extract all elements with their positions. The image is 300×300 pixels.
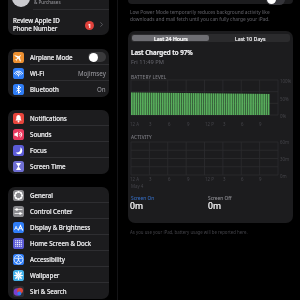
staticText: 6 xyxy=(241,121,244,127)
staticText: 3 xyxy=(149,121,152,127)
staticText: Home Screen & Dock xyxy=(30,239,92,247)
staticText: 0m xyxy=(130,200,143,212)
staticText: On xyxy=(97,85,106,93)
staticText: Sounds xyxy=(30,130,52,138)
other: Airplane Mode toggle xyxy=(88,52,106,62)
staticText: Focus xyxy=(30,146,47,154)
staticText: As you use your iPad, battery usage will… xyxy=(130,229,248,235)
staticText: 6 xyxy=(168,121,171,127)
staticText: 0m xyxy=(208,200,221,212)
button[interactable]: Bluetooth xyxy=(8,81,109,97)
staticText: 12 P xyxy=(205,176,214,182)
staticText: 9 xyxy=(187,121,190,127)
staticText: Fri 11:49 PM xyxy=(131,58,164,66)
button[interactable]: Home Screen & Dock xyxy=(8,235,109,251)
staticText: Screen On xyxy=(131,195,155,202)
staticText: Notifications xyxy=(30,114,67,122)
staticText: Last Charged to 97% xyxy=(131,48,193,56)
button[interactable]: Last 24 Hours xyxy=(132,35,209,41)
button[interactable]: Focus xyxy=(8,142,109,158)
staticText: Phone Number xyxy=(13,24,58,32)
staticText: 1 xyxy=(88,22,92,30)
staticText: 3 xyxy=(223,121,226,127)
staticText: 9 xyxy=(259,121,262,127)
staticText: 6 xyxy=(168,176,171,182)
staticText: Accessibility xyxy=(30,255,65,263)
staticText: Display & Brightness xyxy=(30,223,91,231)
staticText: 50% xyxy=(280,96,289,102)
staticText: BATTERY LEVEL xyxy=(131,74,167,80)
button[interactable]: Sounds xyxy=(8,126,109,142)
staticText: Wallpaper xyxy=(30,271,60,279)
staticText: 9 xyxy=(187,176,190,182)
staticText: Control Center xyxy=(30,207,73,215)
staticText: Siri & Search xyxy=(30,287,67,295)
staticText: 12 P xyxy=(205,121,214,127)
staticText: May 4 xyxy=(131,183,144,189)
button[interactable]: Display & Brightness xyxy=(8,219,109,235)
staticText: Low Power Mode temporarily reduces backg… xyxy=(130,9,270,16)
staticText: & Purchases xyxy=(34,0,61,5)
button[interactable]: Wi-Fi xyxy=(8,65,109,81)
staticText: ACTIVITY xyxy=(131,134,152,140)
button[interactable]: Accessibility xyxy=(8,251,109,267)
staticText: 60m xyxy=(280,139,290,145)
staticText: downloads and mail fetch until you can f… xyxy=(130,16,270,23)
staticText: 0m xyxy=(280,173,287,179)
button[interactable]: Screen Time xyxy=(8,158,109,174)
staticText: Review Apple ID xyxy=(13,16,60,24)
staticText: Mojimsey xyxy=(78,69,106,77)
button[interactable]: Low Power Mode xyxy=(128,0,293,4)
staticText: 3 xyxy=(223,176,226,182)
button[interactable]: Notifications xyxy=(8,110,109,126)
staticText: General xyxy=(30,191,53,199)
button[interactable]: & Purchases xyxy=(8,0,109,35)
staticText: 0% xyxy=(280,113,287,119)
staticText: Bluetooth xyxy=(30,85,59,93)
staticText: 3 xyxy=(149,176,152,182)
staticText: Last 24 Hours xyxy=(154,35,188,41)
staticText: Wi-Fi xyxy=(30,69,45,77)
button[interactable]: Last 10 Days xyxy=(210,34,290,42)
button[interactable]: Control Center xyxy=(8,203,109,219)
staticText: Screen Off xyxy=(208,195,232,202)
other: Low Power Mode toggle xyxy=(266,0,285,5)
button[interactable]: Siri & Search xyxy=(8,283,109,299)
staticText: Last 10 Days xyxy=(235,35,266,42)
staticText: Airplane Mode xyxy=(30,53,73,61)
button[interactable]: General xyxy=(8,187,109,203)
staticText: Screen Time xyxy=(30,162,66,170)
staticText: 12 A xyxy=(130,176,139,182)
staticText: 6 xyxy=(241,176,244,182)
staticText: 12 A xyxy=(130,121,139,127)
button[interactable]: Airplane Mode xyxy=(8,49,109,65)
staticText: 100% xyxy=(280,78,292,84)
staticText: 30m xyxy=(280,156,290,162)
staticText: 9 xyxy=(259,176,262,182)
button[interactable]: Wallpaper xyxy=(8,267,109,283)
